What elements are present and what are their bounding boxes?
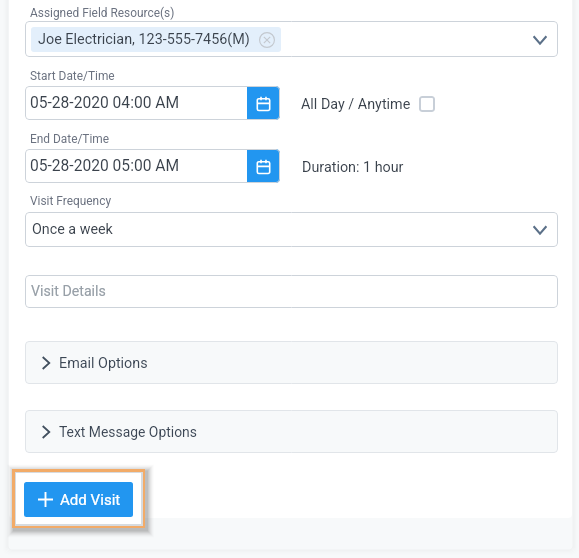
button[interactable]: 05-28-2020 05:00 AM (25, 149, 247, 183)
button[interactable]: 05-28-2020 04:00 AM (25, 86, 247, 120)
staticText: Visit Details (31, 283, 106, 300)
staticText: Joe Electrician, 123-555-7456(M) (38, 31, 250, 48)
button[interactable]: Visit Details (25, 275, 558, 308)
staticText: Duration: 1 hour (302, 159, 404, 176)
staticText: Email Options (59, 355, 148, 372)
staticText: End Date/Time (30, 132, 110, 146)
button[interactable]: Pick date (247, 149, 280, 183)
staticText: 05-28-2020 04:00 AM (30, 94, 180, 112)
staticText: 05-28-2020 05:00 AM (30, 157, 180, 175)
staticText: Once a week (32, 221, 113, 238)
button[interactable]: Pick date (247, 86, 280, 120)
staticText: Start Date/Time (30, 69, 115, 83)
staticText: Visit Frequency (30, 194, 112, 208)
staticText: Assigned Field Resource(s) (30, 6, 175, 20)
staticText: Add Visit (60, 491, 121, 509)
button[interactable]: Add Visit (24, 482, 133, 517)
button[interactable]: Remove resource (259, 32, 275, 48)
button[interactable]: All Day / Anytime (301, 95, 435, 113)
button[interactable]: Email Options (25, 341, 558, 384)
staticText: All Day / Anytime (301, 96, 411, 113)
button[interactable]: Joe Electrician, 123-555-7456(M) (25, 21, 558, 57)
button[interactable]: Text Message Options (25, 410, 558, 453)
button[interactable]: Once a week (25, 212, 558, 247)
staticText: Text Message Options (59, 424, 197, 440)
